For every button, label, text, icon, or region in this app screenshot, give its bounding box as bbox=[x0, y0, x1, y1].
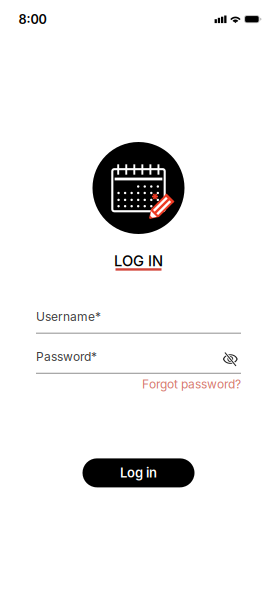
button[interactable]: Log in bbox=[82, 458, 194, 487]
staticText: Log in bbox=[120, 465, 157, 481]
staticText: Forgot password? bbox=[142, 377, 241, 391]
staticText: LOG IN bbox=[114, 252, 163, 270]
staticText: 8:00 bbox=[18, 12, 46, 27]
staticText: Username* bbox=[36, 309, 101, 324]
button[interactable]: Show password bbox=[225, 349, 241, 364]
button[interactable]: Forgot password? bbox=[142, 377, 241, 391]
staticText: Password* bbox=[36, 349, 97, 364]
